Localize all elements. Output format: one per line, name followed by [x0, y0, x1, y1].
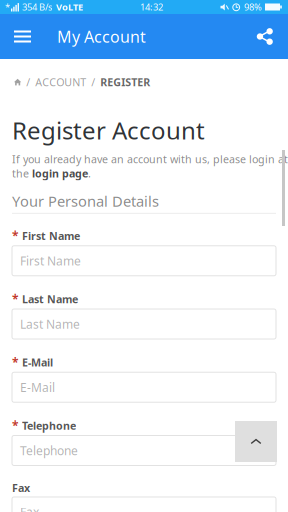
staticText: * — [12, 418, 19, 433]
button[interactable]: ACCOUNT — [35, 75, 86, 89]
staticText: * — [5, 1, 10, 13]
staticText: VoLTE — [56, 1, 83, 13]
staticText: Register Account — [12, 114, 205, 146]
staticText: Last Name — [22, 292, 78, 306]
staticText: Your Personal Details — [12, 191, 159, 211]
button[interactable]: Menu — [0, 14, 45, 59]
staticText: * — [12, 354, 19, 370]
staticText: 98% — [244, 1, 262, 13]
button[interactable]: login page — [32, 166, 88, 180]
staticText: login page — [32, 166, 88, 180]
staticText: E-Mail — [22, 355, 53, 369]
staticText: 354 B/s — [22, 1, 52, 13]
staticText: Fax — [20, 504, 39, 512]
staticText: First Name — [22, 229, 80, 243]
staticText: 14:32 — [140, 1, 163, 13]
staticText: Telephone — [20, 442, 78, 458]
staticText: Fax — [12, 481, 30, 495]
button[interactable]: Hide keyboard — [235, 421, 277, 462]
staticText: Telephone — [22, 418, 76, 433]
staticText: REGISTER — [100, 75, 150, 89]
staticText: ACCOUNT — [35, 75, 86, 89]
staticText: the — [12, 166, 32, 180]
staticText: Last Name — [20, 316, 80, 332]
staticText: / — [91, 75, 95, 89]
staticText: * — [12, 228, 19, 244]
staticText: My Account — [57, 26, 146, 47]
staticText: First Name — [20, 253, 81, 269]
button[interactable]: Home — [14, 79, 21, 85]
staticText: . — [88, 166, 91, 180]
staticText: / — [26, 75, 30, 89]
staticText: E-Mail — [20, 379, 55, 395]
staticText: * — [12, 291, 19, 307]
staticText: If you already have an account with us, … — [12, 152, 288, 166]
button[interactable]: Share — [244, 14, 286, 59]
